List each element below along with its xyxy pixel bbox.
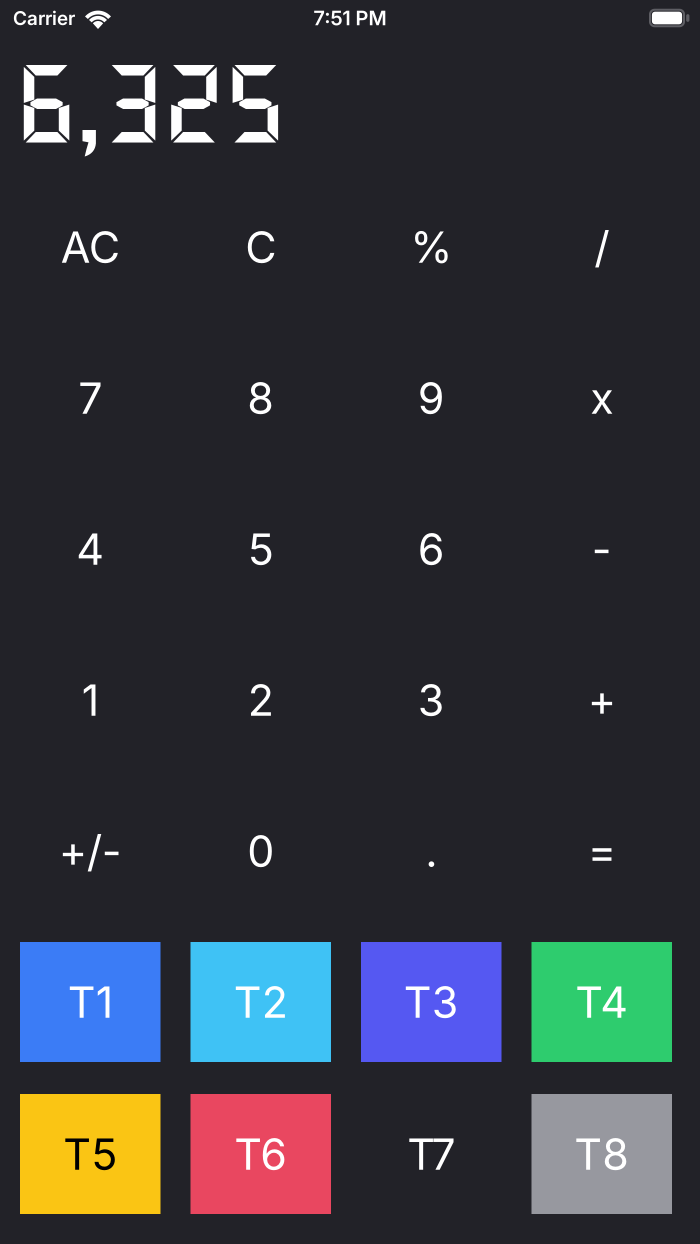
staticText: T6 (234, 1129, 287, 1179)
button[interactable]: 9 (361, 322, 501, 473)
button[interactable]: 0 (190, 775, 331, 926)
staticText: Carrier (13, 7, 75, 29)
button[interactable]: 5 (190, 473, 331, 624)
button[interactable]: 1 (20, 624, 160, 775)
button[interactable]: x (531, 322, 672, 473)
button[interactable]: T4 (531, 942, 672, 1062)
button[interactable]: / (531, 171, 672, 322)
button[interactable]: 7 (20, 322, 160, 473)
button[interactable]: T5 (20, 1094, 160, 1214)
button[interactable]: AC (20, 171, 160, 322)
staticText: / (594, 222, 609, 272)
staticText: T8 (574, 1129, 629, 1179)
button[interactable]: C (190, 171, 331, 322)
staticText: . (425, 826, 437, 876)
button[interactable]: - (531, 473, 672, 624)
staticText: x (590, 373, 613, 423)
staticText: 1 (82, 675, 99, 725)
staticText: - (592, 524, 612, 574)
staticText: C (245, 222, 276, 272)
staticText: AC (61, 222, 120, 272)
staticText: 7 (78, 373, 102, 423)
staticText: 0 (247, 826, 274, 876)
staticText: 7:51 PM (313, 6, 386, 30)
button[interactable]: 3 (361, 624, 501, 775)
button[interactable]: T6 (190, 1094, 331, 1214)
button[interactable]: 8 (190, 322, 331, 473)
button[interactable]: 6 (361, 473, 501, 624)
staticText: T4 (575, 977, 628, 1027)
staticText: 4 (76, 524, 104, 574)
staticText: 8 (247, 373, 274, 423)
staticText: 2 (248, 675, 274, 725)
button[interactable]: 2 (190, 624, 331, 775)
staticText: = (588, 826, 616, 876)
button[interactable]: 4 (20, 473, 160, 624)
staticText: + (588, 675, 616, 725)
staticText: 3 (418, 675, 445, 725)
button[interactable]: T3 (361, 942, 501, 1062)
staticText: +/- (59, 826, 122, 876)
button[interactable]: T2 (190, 942, 331, 1062)
button[interactable]: + (531, 624, 672, 775)
button[interactable]: T1 (20, 942, 160, 1062)
button[interactable]: . (361, 775, 501, 926)
button[interactable]: T7 (361, 1094, 501, 1214)
button[interactable]: T8 (531, 1094, 672, 1214)
staticText: T1 (68, 977, 113, 1027)
button[interactable]: % (361, 171, 501, 322)
staticText: 9 (418, 373, 445, 423)
staticText: % (410, 222, 452, 272)
button[interactable]: +/- (20, 775, 160, 926)
staticText: T5 (63, 1129, 117, 1179)
staticText: T2 (234, 977, 288, 1027)
staticText: 6 (418, 524, 445, 574)
staticText: T7 (407, 1129, 455, 1179)
staticText: 5 (248, 524, 274, 574)
staticText: T3 (404, 977, 459, 1027)
button[interactable]: = (531, 775, 672, 926)
